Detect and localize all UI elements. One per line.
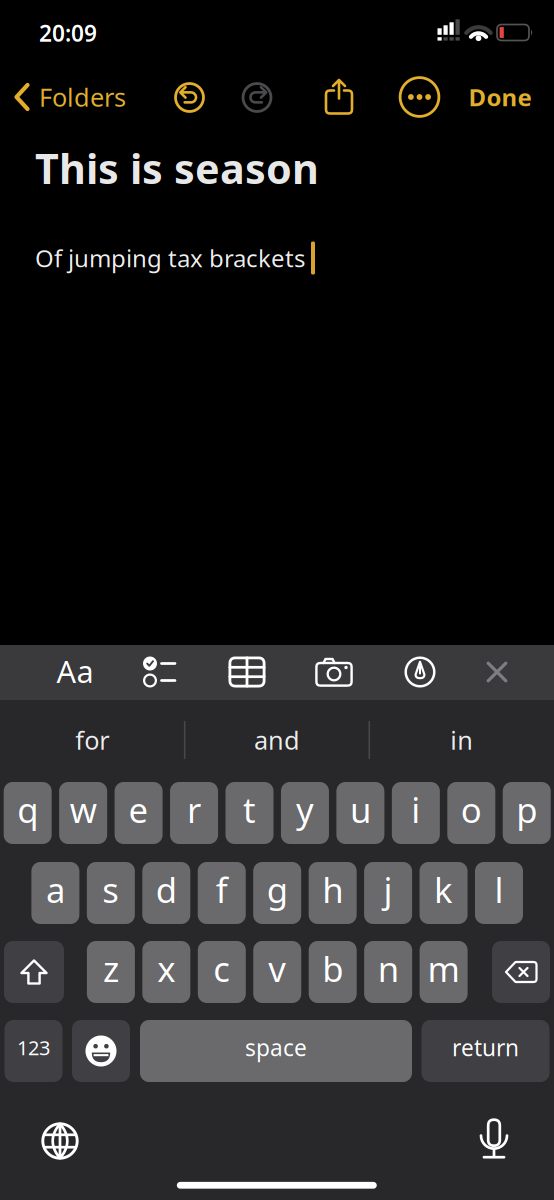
button[interactable]: More [398, 76, 440, 118]
staticText: e [129, 786, 149, 832]
button[interactable]: s [87, 862, 135, 924]
button[interactable]: t [225, 782, 273, 844]
staticText: h [322, 866, 343, 912]
staticText: x [157, 945, 175, 991]
button[interactable]: Share [322, 77, 356, 115]
staticText: i [411, 786, 420, 832]
button[interactable]: f [198, 862, 246, 924]
button[interactable]: l [475, 862, 523, 924]
staticText: n [378, 945, 399, 991]
staticText: z [103, 945, 119, 991]
button[interactable]: i [392, 782, 440, 844]
button[interactable]: q [4, 782, 52, 844]
button[interactable]: and [187, 705, 367, 775]
button[interactable]: Table [228, 656, 265, 687]
button[interactable]: y [281, 782, 329, 844]
button[interactable]: x [142, 941, 190, 1003]
staticText: u [350, 786, 371, 832]
button[interactable]: in [372, 705, 552, 775]
button[interactable]: m [420, 941, 468, 1003]
button[interactable]: b [309, 941, 357, 1003]
staticText: o [461, 786, 482, 832]
staticText: for [75, 723, 109, 757]
staticText: d [156, 866, 177, 912]
staticText: a [46, 866, 65, 912]
button[interactable]: Undo [172, 80, 207, 115]
staticText: 20:09 [39, 18, 97, 48]
staticText: s [102, 866, 119, 912]
staticText: and [254, 723, 300, 757]
button[interactable]: Format [56, 651, 93, 691]
button[interactable]: Shift [4, 941, 64, 1003]
staticText: t [243, 786, 256, 832]
staticText: m [428, 945, 460, 991]
staticText: 123 [17, 1034, 50, 1061]
staticText: This is season [35, 141, 319, 195]
button[interactable]: a [31, 862, 79, 924]
button[interactable]: g [253, 862, 301, 924]
staticText: Aa [56, 651, 93, 691]
staticText: in [450, 723, 473, 757]
staticText: l [494, 866, 503, 912]
button[interactable]: 123 [4, 1020, 62, 1082]
button[interactable]: w [59, 782, 107, 844]
button[interactable]: k [420, 862, 468, 924]
button[interactable]: Markup [403, 655, 437, 689]
staticText: y [296, 786, 314, 832]
button[interactable]: d [142, 862, 190, 924]
button[interactable]: Dictation [477, 1118, 511, 1160]
button[interactable]: Dismiss keyboard [486, 661, 508, 683]
button[interactable]: Folders [14, 80, 126, 114]
button[interactable]: v [253, 941, 301, 1003]
button[interactable]: z [87, 941, 135, 1003]
button[interactable]: Redo [239, 80, 274, 115]
staticText: w [70, 786, 97, 832]
button[interactable]: o [447, 782, 495, 844]
button[interactable]: for [2, 705, 182, 775]
staticText: j [384, 866, 393, 912]
staticText: p [516, 786, 537, 832]
button[interactable]: e [115, 782, 163, 844]
staticText: Of jumping tax brackets [35, 242, 305, 274]
staticText: c [213, 945, 230, 991]
button[interactable]: Camera [315, 657, 353, 687]
button[interactable]: Checklist [142, 654, 178, 690]
button[interactable]: j [364, 862, 412, 924]
staticText: return [452, 1032, 519, 1062]
button[interactable]: Next keyboard [41, 1122, 79, 1160]
staticText: v [268, 945, 286, 991]
staticText: Folders [39, 80, 126, 114]
button[interactable]: space [140, 1020, 412, 1082]
staticText: r [187, 786, 201, 832]
staticText: space [245, 1032, 307, 1062]
staticText: q [17, 786, 38, 832]
button[interactable]: Emoji [72, 1020, 130, 1082]
button[interactable]: r [170, 782, 218, 844]
button[interactable]: u [336, 782, 384, 844]
staticText: f [216, 866, 228, 912]
staticText: g [267, 866, 288, 912]
button[interactable]: n [364, 941, 412, 1003]
button[interactable]: c [198, 941, 246, 1003]
button[interactable]: return [421, 1020, 549, 1082]
button[interactable]: h [309, 862, 357, 924]
staticText: Done [468, 81, 531, 113]
staticText: b [322, 945, 343, 991]
button[interactable]: Delete [492, 941, 550, 1003]
staticText: k [434, 866, 453, 912]
button[interactable]: p [503, 782, 551, 844]
button[interactable]: Done [468, 81, 531, 113]
